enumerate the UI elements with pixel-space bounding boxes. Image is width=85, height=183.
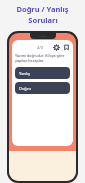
- button[interactable]: Doğru: [15, 82, 70, 94]
- staticText: Yazımı doğrudur: Kiloya göre yapılan hes…: [15, 53, 70, 63]
- staticText: Soruları: [28, 15, 58, 25]
- staticText: Doğru: [19, 86, 32, 91]
- staticText: 2/3: [37, 45, 44, 50]
- button[interactable]: Yanlış: [15, 67, 70, 79]
- staticText: Doğru / Yanlış: [16, 4, 69, 14]
- staticText: Yanlış: [19, 71, 31, 76]
- button[interactable]: Bookmark: [63, 44, 70, 51]
- button[interactable]: Settings: [53, 44, 60, 51]
